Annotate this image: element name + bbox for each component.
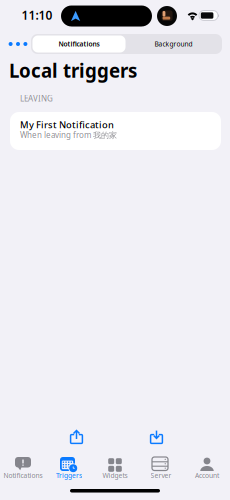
staticText: LEAVING — [20, 93, 53, 104]
staticText: Local triggers — [9, 58, 137, 83]
staticText: Notifications — [58, 40, 99, 48]
button[interactable]: Notifications — [32, 35, 125, 52]
button[interactable]: Triggers — [46, 456, 92, 484]
button[interactable]: Import — [150, 430, 176, 450]
staticText: When leaving from 我的家 — [20, 129, 117, 140]
button[interactable]: Server — [138, 456, 184, 484]
button[interactable]: Notifications — [0, 456, 46, 484]
staticText: Widgets — [102, 471, 127, 480]
staticText: Account — [195, 471, 219, 480]
staticText: 11:10 — [21, 7, 52, 23]
button[interactable]: My First Notification — [10, 112, 221, 150]
staticText: Background — [154, 40, 192, 48]
staticText: Server — [150, 471, 171, 480]
button[interactable]: Account — [184, 456, 230, 484]
button[interactable]: Widgets — [92, 456, 138, 484]
staticText: My First Notification — [20, 118, 114, 131]
button[interactable]: More options — [4, 34, 32, 54]
button[interactable]: Export — [70, 430, 96, 450]
staticText: Notifications — [3, 471, 42, 480]
staticText: Triggers — [56, 471, 82, 480]
button[interactable]: Background — [127, 35, 220, 52]
